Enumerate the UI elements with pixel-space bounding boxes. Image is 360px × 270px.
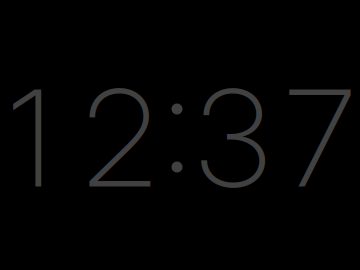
staticText: 2 xyxy=(83,57,156,219)
button[interactable]: 12:37 xyxy=(0,0,360,270)
staticText: 7 xyxy=(285,57,354,219)
staticText: 1 xyxy=(8,57,51,219)
staticText: 3 xyxy=(196,57,270,219)
